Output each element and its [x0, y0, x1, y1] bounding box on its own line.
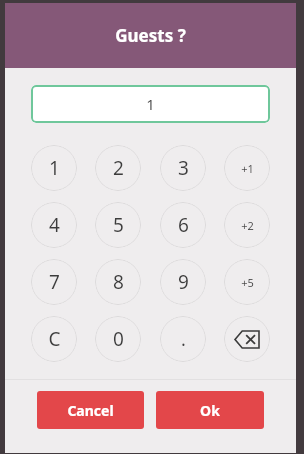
staticText: 4 — [49, 212, 60, 238]
button[interactable]: 6 — [160, 202, 206, 248]
staticText: +2 — [241, 218, 254, 233]
staticText: 2 — [113, 155, 124, 181]
button[interactable]: 0 — [95, 316, 141, 362]
button[interactable]: 3 — [160, 145, 206, 191]
button[interactable]: +2 — [224, 202, 270, 248]
button[interactable]: C — [31, 316, 77, 362]
button[interactable]: 4 — [31, 202, 77, 248]
staticText: Cancel — [67, 401, 114, 420]
button[interactable]: 7 — [31, 259, 77, 305]
button[interactable]: Cancel — [37, 391, 144, 429]
button[interactable]: 8 — [95, 259, 141, 305]
staticText: 0 — [113, 326, 124, 352]
button[interactable]: 2 — [95, 145, 141, 191]
staticText: Guests ? — [115, 24, 186, 47]
staticText: 3 — [178, 155, 189, 181]
staticText: +1 — [241, 161, 254, 176]
button[interactable]: Backspace — [224, 316, 270, 362]
staticText: 1 — [49, 155, 60, 181]
staticText: C — [48, 326, 61, 352]
staticText: 8 — [113, 269, 124, 295]
staticText: 1 — [146, 94, 155, 114]
staticText: Ok — [200, 401, 220, 420]
staticText: 5 — [113, 212, 124, 238]
button[interactable]: 1 — [31, 145, 77, 191]
button[interactable]: Ok — [156, 391, 264, 429]
button[interactable]: +5 — [224, 259, 270, 305]
staticText: 9 — [178, 269, 189, 295]
button[interactable]: . — [160, 316, 206, 362]
staticText: 7 — [49, 269, 60, 295]
staticText: . — [181, 327, 186, 352]
button[interactable]: 9 — [160, 259, 206, 305]
staticText: 6 — [178, 212, 189, 238]
staticText: +5 — [241, 275, 254, 290]
button[interactable]: +1 — [224, 145, 270, 191]
button[interactable]: 5 — [95, 202, 141, 248]
